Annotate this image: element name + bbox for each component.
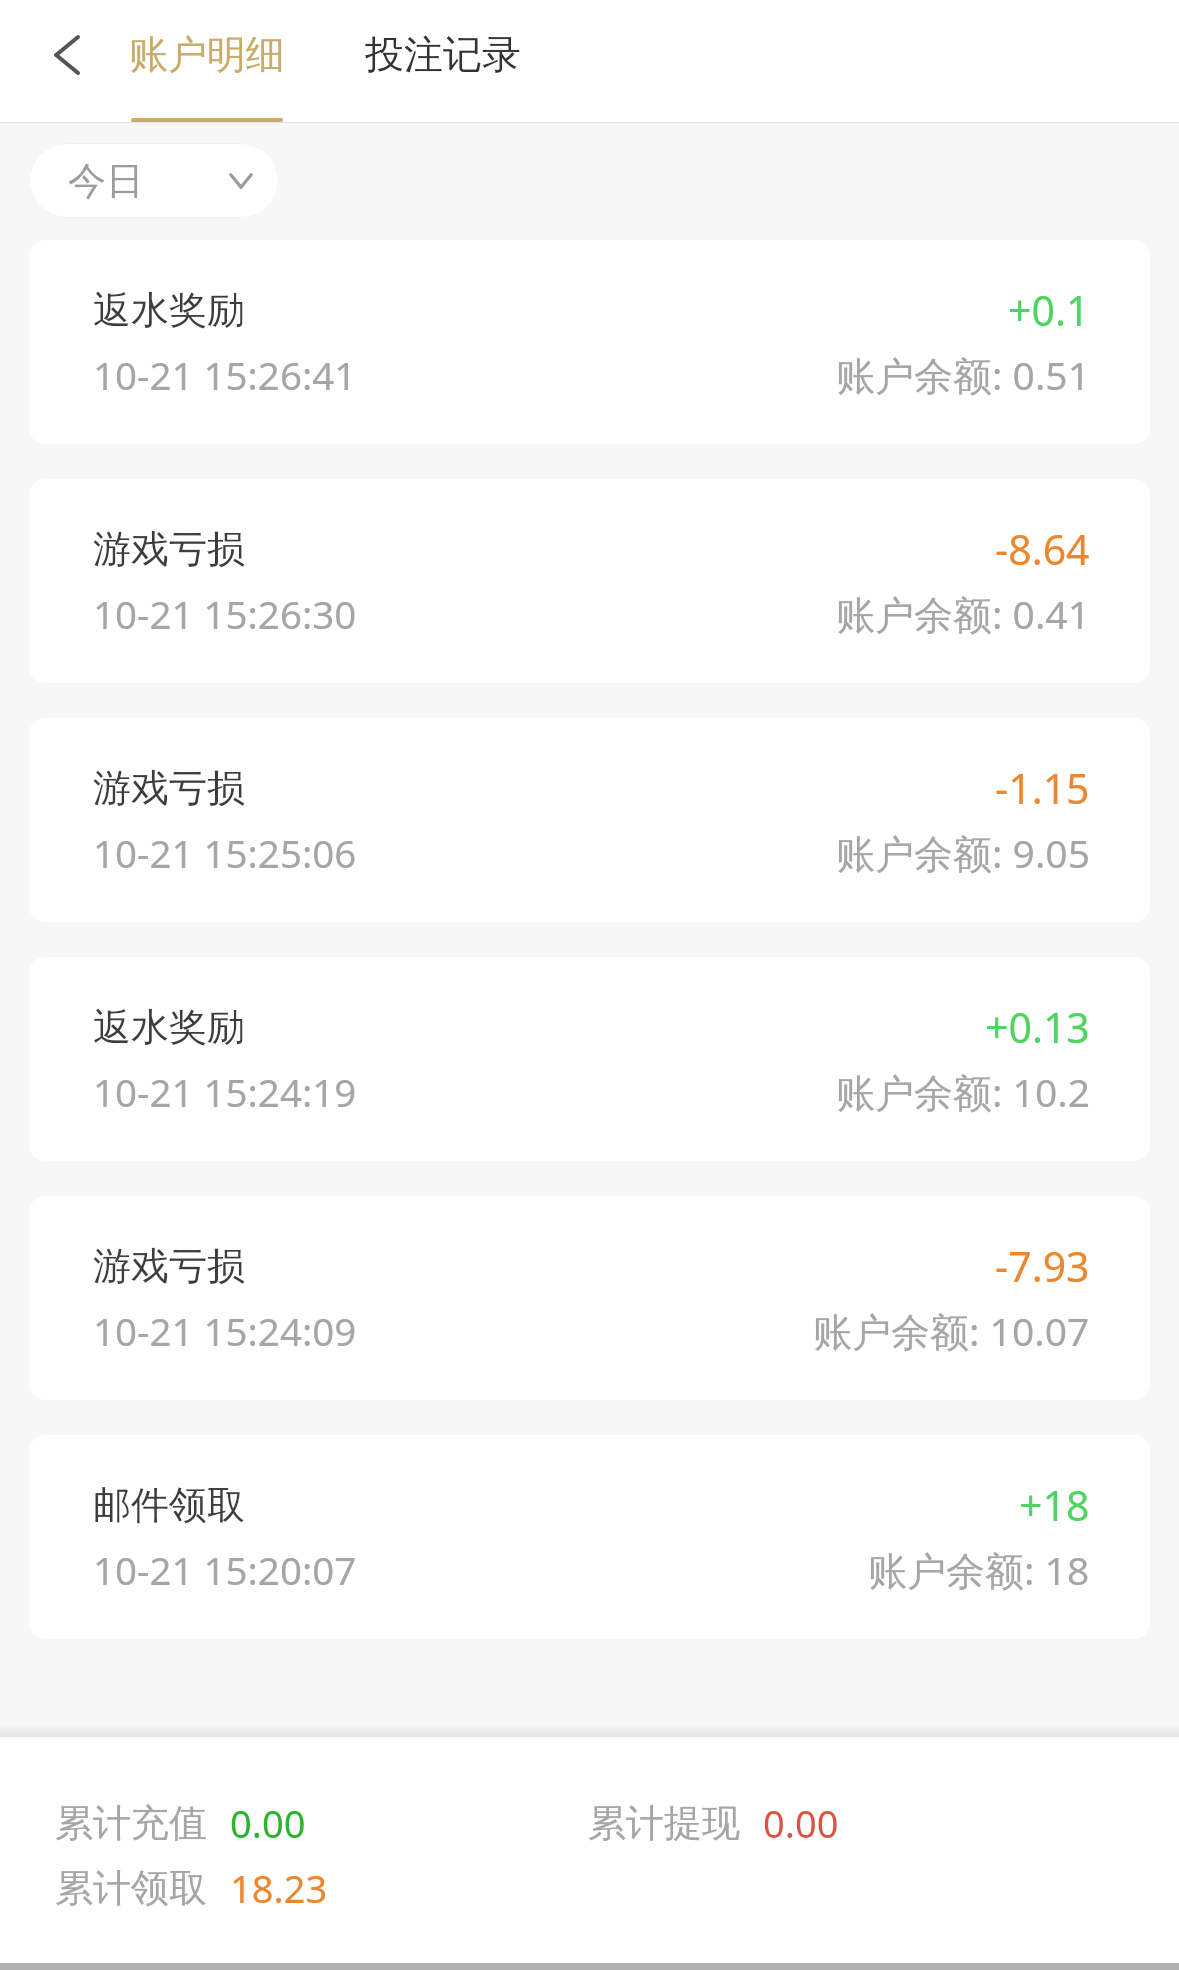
button[interactable]: 返水奖励 [29, 957, 1150, 1161]
button[interactable]: 游戏亏损 [29, 1196, 1150, 1400]
staticText: 游戏亏损 [93, 525, 245, 573]
staticText: -8.64 [995, 521, 1090, 577]
staticText: -7.93 [995, 1238, 1090, 1294]
button[interactable]: 今日 [29, 143, 279, 218]
staticText: 10-21 15:20:07 [93, 1544, 357, 1596]
staticText: 累计领取 [55, 1864, 207, 1912]
staticText: +0.13 [985, 999, 1090, 1055]
staticText: 账户明细 [129, 30, 285, 79]
staticText: +18 [1019, 1477, 1090, 1533]
staticText: 账户余额: 0.51 [836, 348, 1090, 401]
staticText: 账户余额: 18 [868, 1543, 1090, 1596]
staticText: 投注记录 [365, 30, 521, 79]
staticText: 10-21 15:26:30 [93, 588, 357, 640]
staticText: 10-21 15:24:19 [93, 1066, 357, 1118]
button[interactable]: 投注记录 [352, 0, 534, 123]
staticText: 累计充值 [55, 1799, 207, 1847]
button[interactable]: 账户明细 [116, 0, 298, 123]
staticText: 账户余额: 0.41 [836, 587, 1090, 640]
staticText: 累计提现 [588, 1799, 740, 1847]
staticText: 10-21 15:26:41 [93, 349, 357, 401]
staticText: 账户余额: 10.07 [813, 1304, 1090, 1357]
staticText: 0.00 [763, 1797, 839, 1849]
staticText: 18.23 [230, 1862, 328, 1914]
staticText: +0.1 [1008, 282, 1090, 338]
staticText: 邮件领取 [93, 1481, 245, 1529]
staticText: 游戏亏损 [93, 764, 245, 812]
staticText: 今日 [68, 157, 144, 205]
staticText: 账户余额: 10.2 [836, 1065, 1090, 1118]
staticText: 10-21 15:24:09 [93, 1305, 357, 1357]
staticText: 游戏亏损 [93, 1242, 245, 1290]
staticText: 0.00 [230, 1797, 306, 1849]
staticText: 返水奖励 [93, 1003, 245, 1051]
button[interactable]: 返水奖励 [29, 240, 1150, 444]
staticText: 返水奖励 [93, 286, 245, 334]
staticText: -1.15 [995, 760, 1090, 816]
staticText: 10-21 15:25:06 [93, 827, 357, 879]
staticText: 账户余额: 9.05 [836, 826, 1090, 879]
button[interactable]: 邮件领取 [29, 1435, 1150, 1639]
button[interactable]: Back [22, 10, 112, 100]
button[interactable]: 游戏亏损 [29, 718, 1150, 922]
button[interactable]: 游戏亏损 [29, 479, 1150, 683]
